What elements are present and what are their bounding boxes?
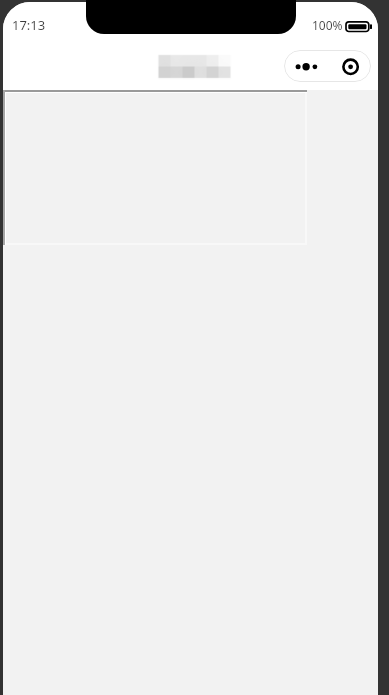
staticText: 100% (312, 17, 343, 33)
button[interactable]: More options (284, 50, 331, 82)
staticText: 17:13 (12, 16, 46, 34)
button[interactable]: Record (331, 50, 371, 82)
